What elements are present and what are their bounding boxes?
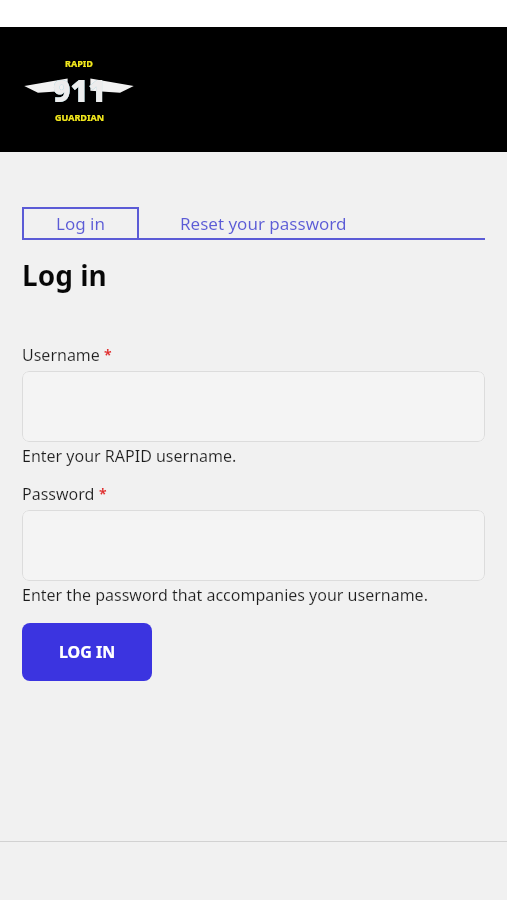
staticText: 911 <box>53 70 106 111</box>
staticText: * <box>99 484 107 503</box>
staticText: Password <box>22 483 95 505</box>
staticText: 911 <box>53 70 106 111</box>
button[interactable]: LOG IN <box>22 623 152 681</box>
staticText: Username <box>22 344 100 366</box>
button[interactable]: Log in <box>22 207 139 240</box>
staticText: LOG IN <box>59 641 116 663</box>
button[interactable]: Rapid 911 Guardian logo <box>22 56 136 124</box>
staticText: Log in <box>22 256 107 294</box>
staticText: RAPID <box>65 57 93 69</box>
button[interactable] <box>22 510 485 581</box>
staticText: Enter your RAPID username. <box>22 445 237 467</box>
button[interactable]: Reset your password <box>180 207 347 240</box>
button[interactable] <box>22 371 485 442</box>
staticText: Log in <box>56 212 105 235</box>
staticText: Reset your password <box>180 212 347 235</box>
staticText: GUARDIAN <box>55 111 104 123</box>
staticText: * <box>104 345 112 364</box>
staticText: Enter the password that accompanies your… <box>22 584 428 606</box>
